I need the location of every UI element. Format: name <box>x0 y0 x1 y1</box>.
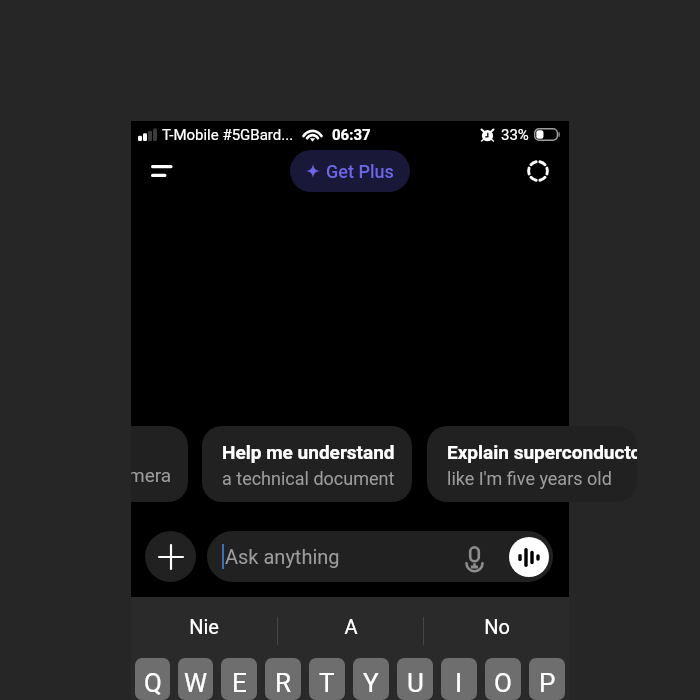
button[interactable]: Y <box>353 658 389 700</box>
button[interactable]: W <box>178 658 213 700</box>
button[interactable]: U <box>397 658 433 700</box>
button[interactable]: P <box>529 658 565 700</box>
staticText: 33% <box>501 126 529 144</box>
staticText: 06:37 <box>332 126 371 144</box>
button[interactable]: Nie <box>131 597 277 658</box>
staticText: Get Plus <box>326 161 394 182</box>
staticText: a technical document <box>222 468 395 489</box>
button[interactable]: Add attachment <box>145 531 196 582</box>
staticText: like I'm five years old <box>447 468 612 489</box>
staticText: U <box>407 668 424 698</box>
button[interactable]: Dictate <box>456 539 492 575</box>
staticText: I <box>455 668 463 698</box>
button[interactable]: A <box>278 597 423 658</box>
button[interactable]: Explain superconductors <box>427 426 637 502</box>
button[interactable]: No <box>424 597 569 658</box>
button[interactable]: mera <box>131 426 188 502</box>
staticText: Explain superconductors <box>447 441 637 463</box>
staticText: Nie <box>189 615 219 638</box>
staticText: Ask anything <box>225 545 340 568</box>
staticText: W <box>184 668 208 698</box>
button[interactable]: Menu <box>139 150 183 192</box>
staticText: T-Mobile #5GBard... <box>162 126 294 144</box>
button[interactable]: T <box>309 658 345 700</box>
staticText: P <box>539 668 556 698</box>
staticText: T <box>319 668 335 698</box>
staticText: Help me understand <box>222 441 395 463</box>
staticText: E <box>232 668 247 698</box>
button[interactable]: E <box>221 658 257 700</box>
button[interactable]: R <box>265 658 301 700</box>
button[interactable]: Q <box>135 658 170 700</box>
staticText: A <box>344 615 358 638</box>
button[interactable]: Ask anything <box>207 531 553 582</box>
button[interactable]: I <box>441 658 477 700</box>
button[interactable]: Get Plus <box>290 150 410 192</box>
button[interactable]: O <box>485 658 521 700</box>
button[interactable]: Profile <box>518 151 558 191</box>
staticText: No <box>484 615 510 638</box>
button[interactable]: Help me understand <box>202 426 412 502</box>
staticText: R <box>275 668 292 698</box>
staticText: mera <box>131 464 172 486</box>
staticText: Y <box>363 668 379 698</box>
button[interactable]: Voice mode <box>509 537 549 577</box>
staticText: O <box>494 668 512 698</box>
staticText: Q <box>144 668 162 698</box>
